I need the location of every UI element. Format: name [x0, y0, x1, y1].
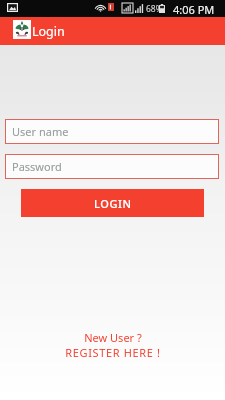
staticText: Login [32, 23, 65, 40]
staticText: User name [12, 124, 69, 139]
staticText: New User ? [84, 330, 142, 345]
staticText: REGISTER HERE ! [65, 345, 161, 360]
button[interactable]: Password [5, 154, 219, 179]
button[interactable]: User name [5, 119, 219, 144]
other: App logo [13, 20, 31, 39]
staticText: 68% [146, 3, 163, 15]
staticText: Password [12, 159, 62, 174]
other: Gallery [7, 3, 18, 12]
staticText: 4:06 PM [173, 2, 215, 17]
staticText: LOGIN [94, 196, 132, 211]
button[interactable]: New User ? [0, 330, 225, 360]
button[interactable]: LOGIN [21, 189, 204, 217]
